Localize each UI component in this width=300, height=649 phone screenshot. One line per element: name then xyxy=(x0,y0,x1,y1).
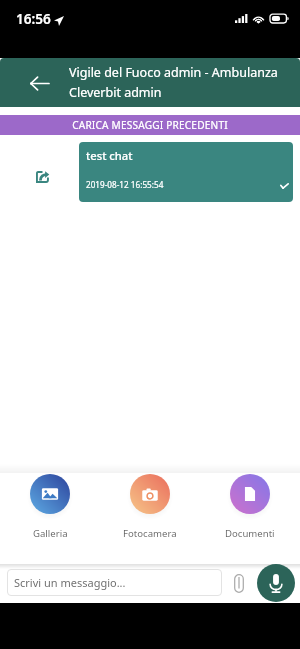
button[interactable]: Record voice message xyxy=(257,564,295,602)
button[interactable]: Forward message xyxy=(27,162,57,192)
button[interactable]: Fotocamera xyxy=(112,464,188,564)
staticText: 2019-08-12 16:55:54 xyxy=(86,179,164,190)
staticText: Documenti xyxy=(225,527,275,540)
staticText: test chat xyxy=(86,148,133,163)
button[interactable]: Attach file xyxy=(228,570,250,596)
staticText: Vigile del Fuoco admin - Ambulanza Cleve… xyxy=(69,64,294,101)
button[interactable]: Scrivi un messaggio... xyxy=(7,569,222,596)
button[interactable]: Documenti xyxy=(212,464,288,564)
staticText: 16:56 xyxy=(16,9,51,28)
button[interactable]: CARICA MESSAGGI PRECEDENTI xyxy=(0,115,300,135)
staticText: CARICA MESSAGGI PRECEDENTI xyxy=(72,118,228,132)
staticText: Fotocamera xyxy=(123,527,177,540)
button[interactable]: test chat xyxy=(79,142,293,202)
button[interactable]: Back xyxy=(24,68,54,98)
staticText: Galleria xyxy=(33,527,68,540)
button[interactable]: Galleria xyxy=(12,464,88,564)
staticText: Scrivi un messaggio... xyxy=(14,575,126,590)
